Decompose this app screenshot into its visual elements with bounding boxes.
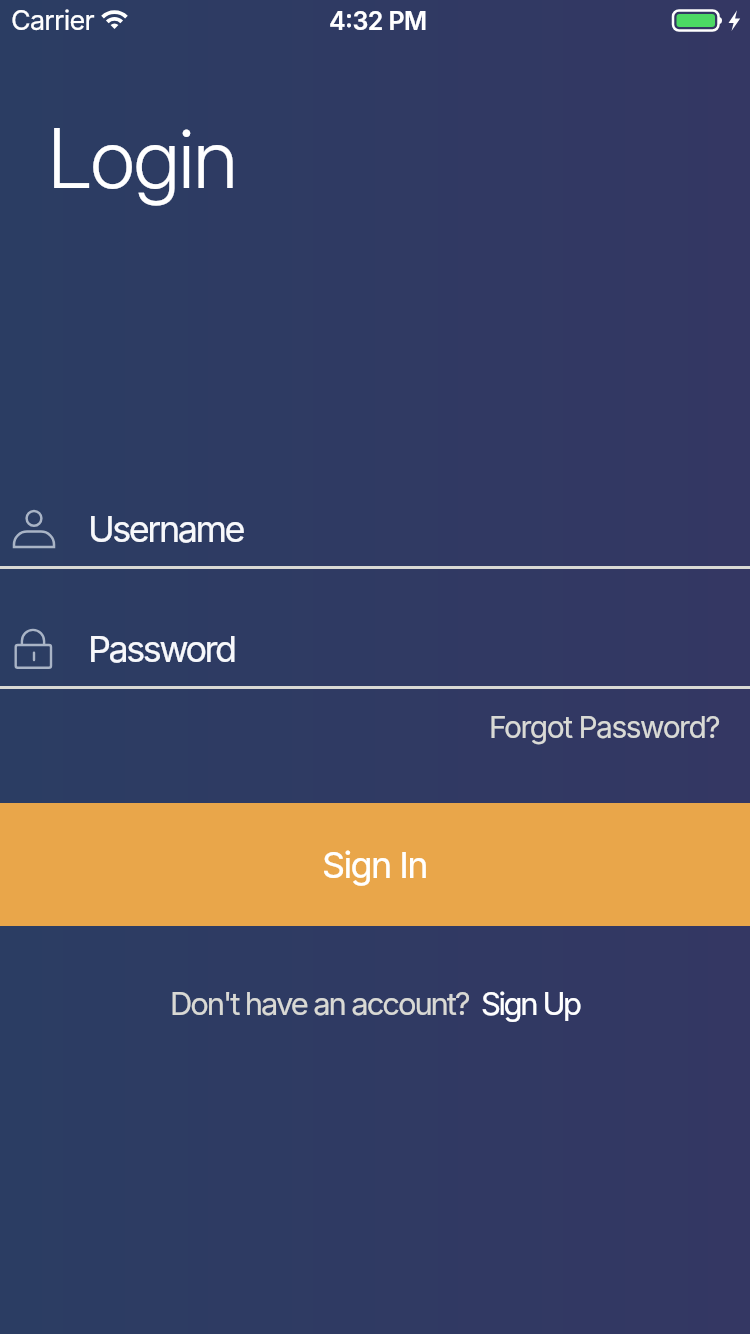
button[interactable]: Sign In <box>0 803 750 926</box>
staticText: Carrier <box>11 4 94 37</box>
staticText: Don't have an account? <box>170 985 469 1023</box>
staticText: Sign Up <box>481 985 580 1023</box>
button[interactable]: Password <box>0 608 750 688</box>
staticText: Password <box>88 627 235 671</box>
button[interactable]: Forgot Password? <box>489 709 720 745</box>
button[interactable]: Sign Up <box>481 985 580 1023</box>
button[interactable]: Username <box>0 488 750 569</box>
staticText: Sign In <box>322 843 428 887</box>
staticText: Username <box>88 507 243 551</box>
staticText: 4:32 PM <box>329 6 427 36</box>
staticText: Forgot Password? <box>489 709 720 745</box>
staticText: Login <box>48 109 237 208</box>
